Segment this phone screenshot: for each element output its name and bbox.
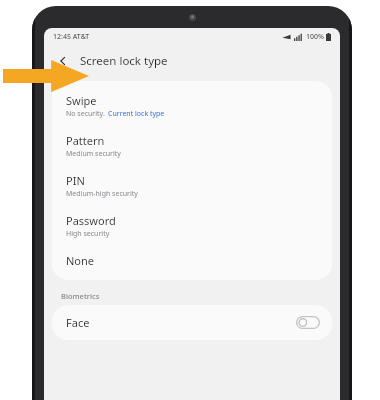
staticText: PIN <box>66 173 85 188</box>
staticText: None <box>66 253 95 268</box>
staticText: Password <box>66 213 116 228</box>
staticText: Face <box>66 315 90 330</box>
button[interactable]: Swipe <box>52 86 332 126</box>
button[interactable]: Back <box>51 49 75 73</box>
button[interactable]: None <box>52 246 332 275</box>
staticText: Pattern <box>66 133 105 148</box>
staticText: 100% <box>306 32 324 42</box>
staticText: 12:45 AT&T <box>53 32 90 42</box>
button[interactable]: Password <box>52 206 332 246</box>
button[interactable]: PIN <box>52 166 332 206</box>
staticText: Swipe <box>66 93 97 108</box>
button[interactable]: Pattern <box>52 126 332 166</box>
button[interactable]: Face <box>52 305 332 340</box>
staticText: Medium-high security <box>66 189 138 199</box>
button[interactable]: Face toggle <box>296 316 320 329</box>
staticText: Medium security <box>66 149 121 159</box>
staticText: Screen lock type <box>80 53 168 69</box>
staticText: High security <box>66 229 110 239</box>
staticText: Current lock type <box>108 109 165 119</box>
staticText: Biometrics <box>61 291 100 301</box>
staticText: No security. <box>66 109 105 119</box>
